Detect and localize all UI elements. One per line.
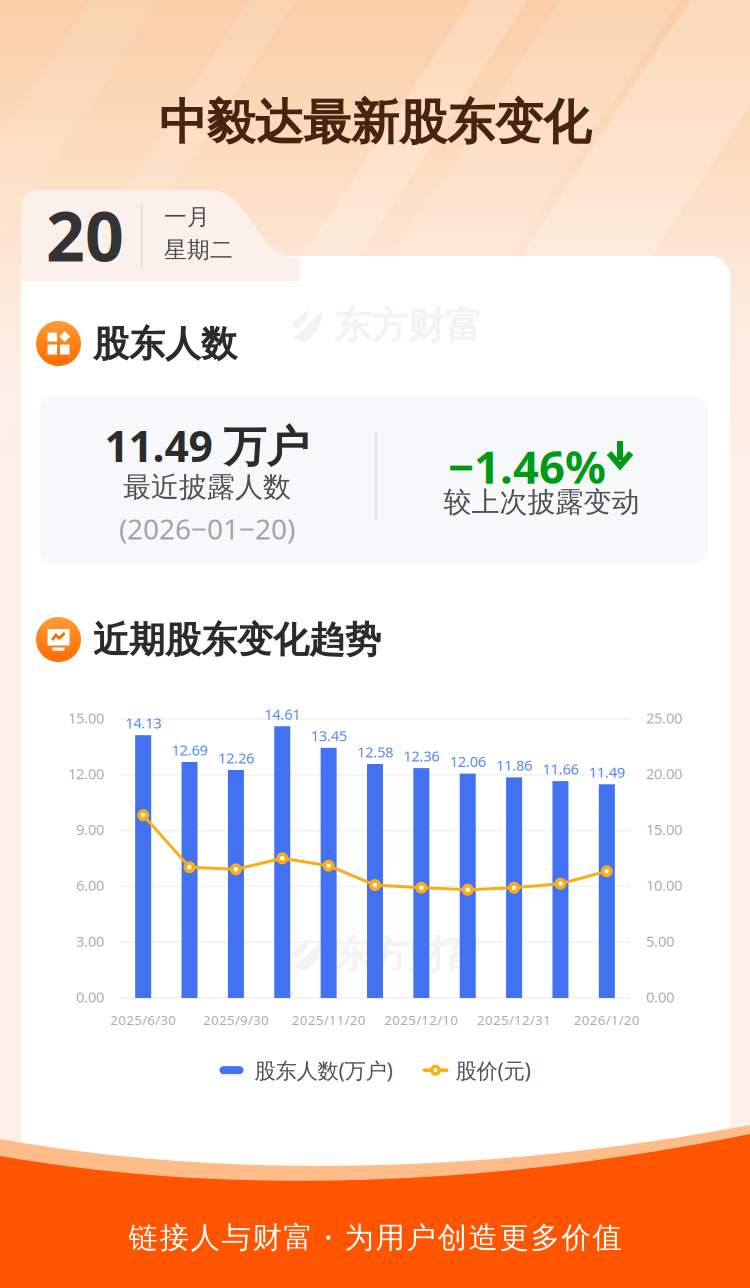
staticText: 11.86 [496,755,532,775]
staticText: 股东人数 [93,322,237,366]
staticText: 6.00 [76,875,104,895]
staticText: 2025/12/31 [477,1011,551,1029]
staticText: 东方财富 [334,932,482,978]
staticText: 15.00 [646,820,682,839]
staticText: 10.00 [646,875,682,895]
staticText: 股东人数(万户) [254,1056,392,1084]
staticText: 11.49 [589,762,625,782]
staticText: 较上次披露变动 [443,485,639,519]
staticText: 11.66 [542,759,578,779]
staticText: 9.00 [76,820,104,839]
staticText: 12.58 [357,742,393,761]
staticText: −1.46% [448,436,606,496]
staticText: 12.36 [403,746,439,766]
staticText: 12.26 [218,748,254,767]
staticText: 2025/6/30 [110,1011,176,1029]
staticText: 3.00 [76,931,104,951]
staticText: 东方财富 [334,303,482,349]
staticText: 11.49 万户 [104,417,309,474]
staticText: 2025/11/20 [292,1011,366,1029]
staticText: 2025/9/30 [203,1011,269,1029]
staticText: 14.13 [125,713,161,733]
staticText: 20 [46,190,124,280]
staticText: 最近披露人数 [123,470,291,504]
staticText: 股价(元) [455,1056,530,1084]
staticText: 0.00 [76,987,104,1006]
staticText: 25.00 [646,708,682,727]
staticText: 链接人与财富 · 为用户创造更多价值 [128,1217,621,1256]
staticText: 14.61 [264,704,300,724]
staticText: 13.45 [311,726,347,745]
staticText: 中毅达最新股东变化 [159,93,591,152]
staticText: 2026/1/20 [574,1011,640,1029]
staticText: 15.00 [68,708,104,727]
staticText: 0.00 [646,987,674,1006]
staticText: 20.00 [646,764,682,783]
staticText: 一月 [164,203,210,231]
staticText: 近期股东变化趋势 [93,618,381,662]
staticText: 2025/12/10 [384,1011,458,1029]
staticText: 5.00 [646,931,674,951]
staticText: (2026−01−20) [119,510,295,547]
staticText: 12.06 [450,752,486,771]
staticText: 12.00 [68,764,104,783]
staticText: 12.69 [171,740,207,759]
staticText: 星期二 [164,236,233,264]
